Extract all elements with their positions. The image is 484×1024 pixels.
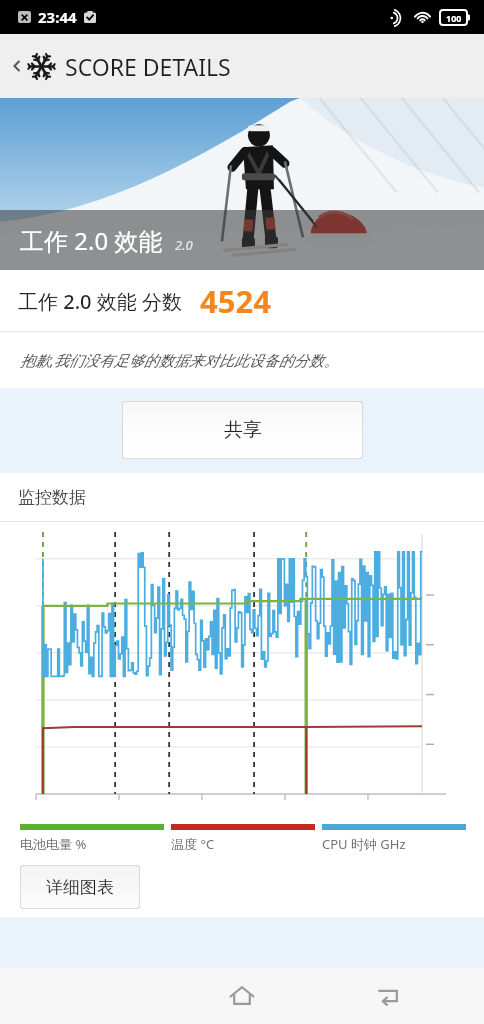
staticText: CPU 时钟 GHz: [322, 835, 466, 853]
other: Back: [9, 58, 25, 74]
staticText: 详细图表: [46, 877, 114, 898]
button[interactable]: Back: [364, 972, 412, 1020]
button[interactable]: 详细图表: [20, 865, 140, 909]
staticText: 2.0: [175, 236, 193, 254]
staticText: 4524: [200, 280, 271, 322]
staticText: SCORE DETAILS: [65, 51, 231, 82]
button[interactable]: 共享: [122, 401, 363, 459]
staticText: 工作 2.0 效能 分数: [18, 288, 182, 315]
staticText: 工作 2.0 效能: [20, 224, 163, 257]
staticText: 抱歉,我们没有足够的数据来对比此设备的分数。: [20, 350, 339, 370]
staticText: 温度 °C: [171, 835, 315, 853]
staticText: 电池电量 %: [20, 835, 164, 853]
button[interactable]: Home: [218, 972, 266, 1020]
staticText: 共享: [224, 418, 262, 442]
staticText: 23:44: [38, 7, 77, 27]
staticText: 100: [446, 12, 462, 24]
button[interactable]: Back: [0, 34, 484, 98]
staticText: 监控数据: [18, 487, 86, 508]
